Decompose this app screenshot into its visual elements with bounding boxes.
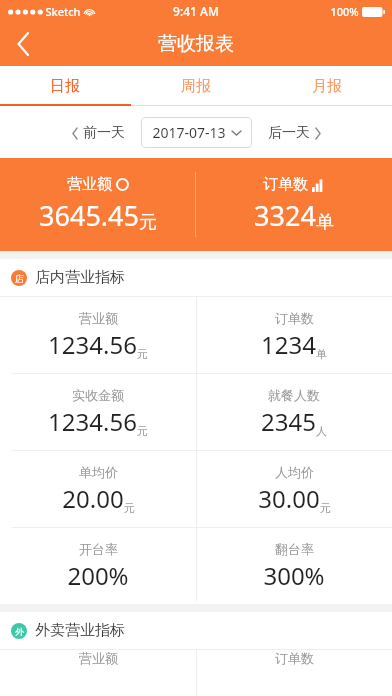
staticText: 元 — [320, 501, 331, 515]
staticText: 3324 — [254, 197, 316, 234]
button[interactable]: 实收金额 — [0, 374, 196, 450]
staticText: 人均价 — [275, 464, 314, 480]
button[interactable]: 月报 — [261, 66, 392, 106]
staticText: 周报 — [181, 77, 211, 96]
staticText: 外卖营业指标 — [35, 621, 125, 640]
staticText: 就餐人数 — [268, 387, 320, 403]
button[interactable]: 订单数 — [196, 650, 392, 696]
staticText: 后一天 — [268, 124, 310, 142]
button[interactable]: 外 — [0, 612, 392, 649]
staticText: 200% — [67, 559, 129, 592]
button[interactable]: 返回 — [0, 22, 46, 66]
staticText: 日报 — [50, 77, 80, 96]
button[interactable]: 营业额 — [0, 297, 196, 373]
other: 趋势图 — [312, 178, 326, 192]
staticText: 营业额 — [79, 310, 118, 326]
button[interactable]: 后一天 — [262, 118, 327, 148]
staticText: 20.00 — [62, 482, 124, 515]
button[interactable]: 前一天 — [66, 118, 131, 148]
staticText: 订单数 — [275, 650, 314, 666]
staticText: 订单数 — [263, 175, 308, 194]
button[interactable]: 店 — [0, 259, 392, 296]
staticText: 营业额 — [79, 650, 118, 666]
staticText: 2017-07-13 — [152, 123, 226, 142]
staticText: 300% — [263, 559, 325, 592]
staticText: 订单数 — [275, 310, 314, 326]
staticText: 实收金额 — [72, 387, 124, 403]
button[interactable]: 就餐人数 — [196, 374, 392, 450]
staticText: 1234 — [261, 328, 316, 361]
button[interactable]: 营业额 — [0, 650, 196, 696]
button[interactable]: 人均价 — [196, 451, 392, 527]
staticText: 2345 — [261, 405, 316, 438]
staticText: 人 — [316, 424, 327, 438]
staticText: 元 — [139, 211, 157, 234]
staticText: 100% — [330, 4, 359, 19]
staticText: 翻台率 — [275, 541, 314, 557]
button[interactable]: 单均价 — [0, 451, 196, 527]
staticText: 1234.56 — [48, 405, 137, 438]
staticText: 单 — [316, 211, 334, 234]
staticText: 元 — [137, 424, 148, 438]
staticText: 店 — [15, 273, 24, 284]
staticText: 前一天 — [83, 124, 125, 142]
staticText: 9:41 AM — [173, 3, 219, 19]
staticText: 营收报表 — [158, 32, 234, 56]
staticText: 3645.45 — [39, 197, 139, 234]
staticText: 店内营业指标 — [35, 268, 125, 287]
other: 说明 — [116, 178, 129, 191]
staticText: 元 — [137, 347, 148, 361]
staticText: 营业额 — [67, 175, 112, 194]
button[interactable]: 周报 — [130, 66, 261, 106]
button[interactable]: 2017-07-13 — [141, 117, 252, 148]
staticText: 元 — [124, 501, 135, 515]
staticText: 开台率 — [79, 541, 118, 557]
staticText: 单 — [316, 347, 327, 361]
staticText: 30.00 — [258, 482, 320, 515]
staticText: Sketch — [45, 4, 81, 19]
staticText: 1234.56 — [48, 328, 137, 361]
staticText: 月报 — [312, 77, 342, 96]
button[interactable]: 订单数 — [196, 297, 392, 373]
button[interactable]: 日报 — [0, 66, 130, 106]
staticText: 外 — [15, 626, 24, 637]
button[interactable]: 开台率 — [0, 528, 196, 604]
button[interactable]: 订单数 — [196, 158, 392, 251]
button[interactable]: 翻台率 — [196, 528, 392, 604]
button[interactable]: 营业额 — [0, 158, 195, 251]
staticText: 单均价 — [79, 464, 118, 480]
